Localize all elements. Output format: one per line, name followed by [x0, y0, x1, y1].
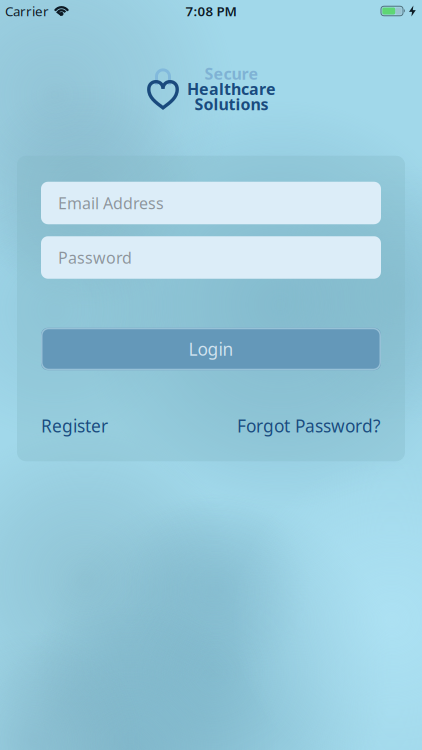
staticText: Password	[58, 247, 132, 268]
staticText: Login	[188, 337, 233, 360]
staticText: Carrier	[5, 2, 49, 20]
staticText: Forgot Password?	[237, 414, 381, 437]
staticText: Register	[41, 414, 108, 437]
button[interactable]: Forgot Password?	[237, 414, 381, 437]
button[interactable]: Register	[41, 414, 108, 437]
staticText: Healthcare	[187, 78, 276, 99]
staticText: Email Address	[58, 192, 164, 214]
staticText: Secure	[204, 63, 258, 84]
button[interactable]: Password	[41, 236, 381, 279]
staticText: Solutions	[194, 93, 268, 115]
staticText: 7:08 PM	[185, 2, 236, 20]
button[interactable]: Email Address	[41, 182, 381, 224]
button[interactable]: Login	[41, 328, 381, 370]
